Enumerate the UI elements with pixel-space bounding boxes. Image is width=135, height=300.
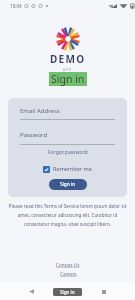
button[interactable]: Contact Us	[56, 262, 80, 268]
staticText: Password	[20, 131, 48, 139]
staticText: 10:04	[10, 3, 22, 9]
button[interactable]: Forgot password	[48, 149, 88, 156]
staticText: APP	[63, 68, 73, 72]
button[interactable]: Recents	[96, 284, 111, 299]
staticText: DEMO	[50, 52, 86, 66]
button[interactable]: Careers	[60, 271, 77, 277]
button[interactable]: Back	[24, 284, 39, 299]
button[interactable]: Remember me	[43, 165, 92, 173]
staticText: Sign in	[60, 181, 76, 188]
staticText: Sign in	[51, 72, 85, 86]
staticText: Sign in	[60, 289, 75, 295]
staticText: Please read this Terms of Service lorem …	[6, 203, 129, 227]
button[interactable]: Sign in	[49, 179, 87, 190]
staticText: Email Address	[20, 107, 60, 115]
button[interactable]: Sign in	[49, 72, 87, 86]
staticText: Remember me	[53, 165, 92, 173]
button[interactable]: Home	[60, 284, 75, 299]
